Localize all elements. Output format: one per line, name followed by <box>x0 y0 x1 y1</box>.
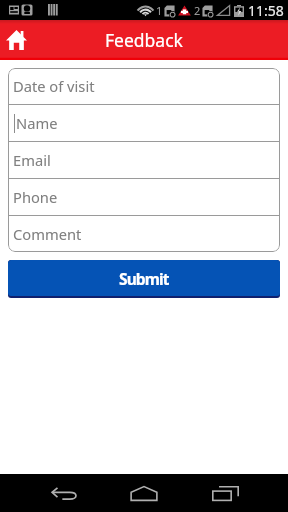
staticText: Feedback <box>105 28 183 52</box>
button[interactable]: Back <box>34 474 94 512</box>
staticText: Email <box>13 150 51 170</box>
button[interactable]: Phone <box>8 179 280 215</box>
button[interactable]: Date of visit <box>8 68 280 104</box>
staticText: Submit <box>119 268 169 289</box>
button[interactable]: Home <box>114 474 174 512</box>
button[interactable]: Name <box>8 105 280 141</box>
staticText: 11:58 <box>248 1 284 20</box>
staticText: Phone <box>13 187 58 207</box>
button[interactable]: Home <box>0 20 32 60</box>
staticText: Date of visit <box>13 76 95 96</box>
staticText: Comment <box>13 224 82 244</box>
button[interactable]: Submit <box>8 260 280 298</box>
staticText: 2 <box>194 3 201 18</box>
staticText: 1 <box>156 3 163 18</box>
button[interactable]: Comment <box>8 216 280 252</box>
button[interactable]: Recent apps <box>195 474 255 512</box>
button[interactable]: Email <box>8 142 280 178</box>
staticText: Name <box>16 113 58 133</box>
